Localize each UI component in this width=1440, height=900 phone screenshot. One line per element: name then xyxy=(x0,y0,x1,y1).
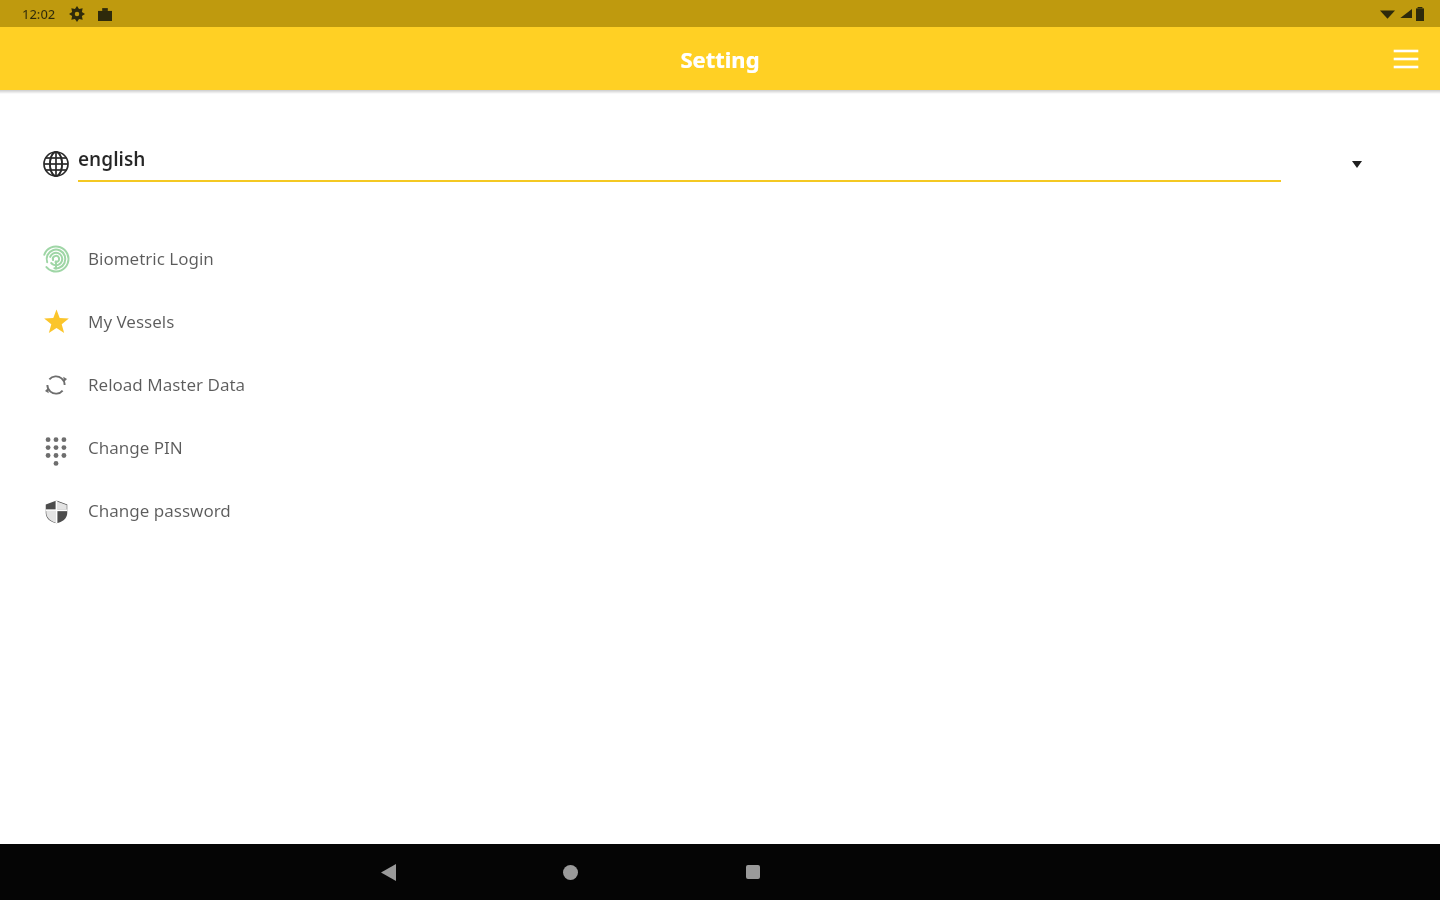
button[interactable]: Home xyxy=(542,844,598,900)
button[interactable]: Back xyxy=(360,844,416,900)
button[interactable]: Open navigation menu xyxy=(1382,35,1430,83)
staticText: Change PIN xyxy=(88,436,183,459)
staticText: Reload Master Data xyxy=(88,373,246,396)
button[interactable]: Change PIN xyxy=(0,416,1440,479)
button[interactable]: Change password xyxy=(0,479,1440,542)
staticText: english xyxy=(78,146,146,172)
staticText: My Vessels xyxy=(88,310,175,333)
button[interactable]: english xyxy=(0,138,1440,190)
button[interactable]: Reload Master Data xyxy=(0,353,1440,416)
staticText: Setting xyxy=(680,44,760,74)
staticText: Biometric Login xyxy=(88,247,214,270)
button[interactable]: My Vessels xyxy=(0,290,1440,353)
button[interactable]: Biometric Login xyxy=(0,227,1440,290)
button[interactable]: Recent apps xyxy=(725,844,781,900)
staticText: 12:02 xyxy=(22,5,56,23)
staticText: Change password xyxy=(88,499,231,522)
